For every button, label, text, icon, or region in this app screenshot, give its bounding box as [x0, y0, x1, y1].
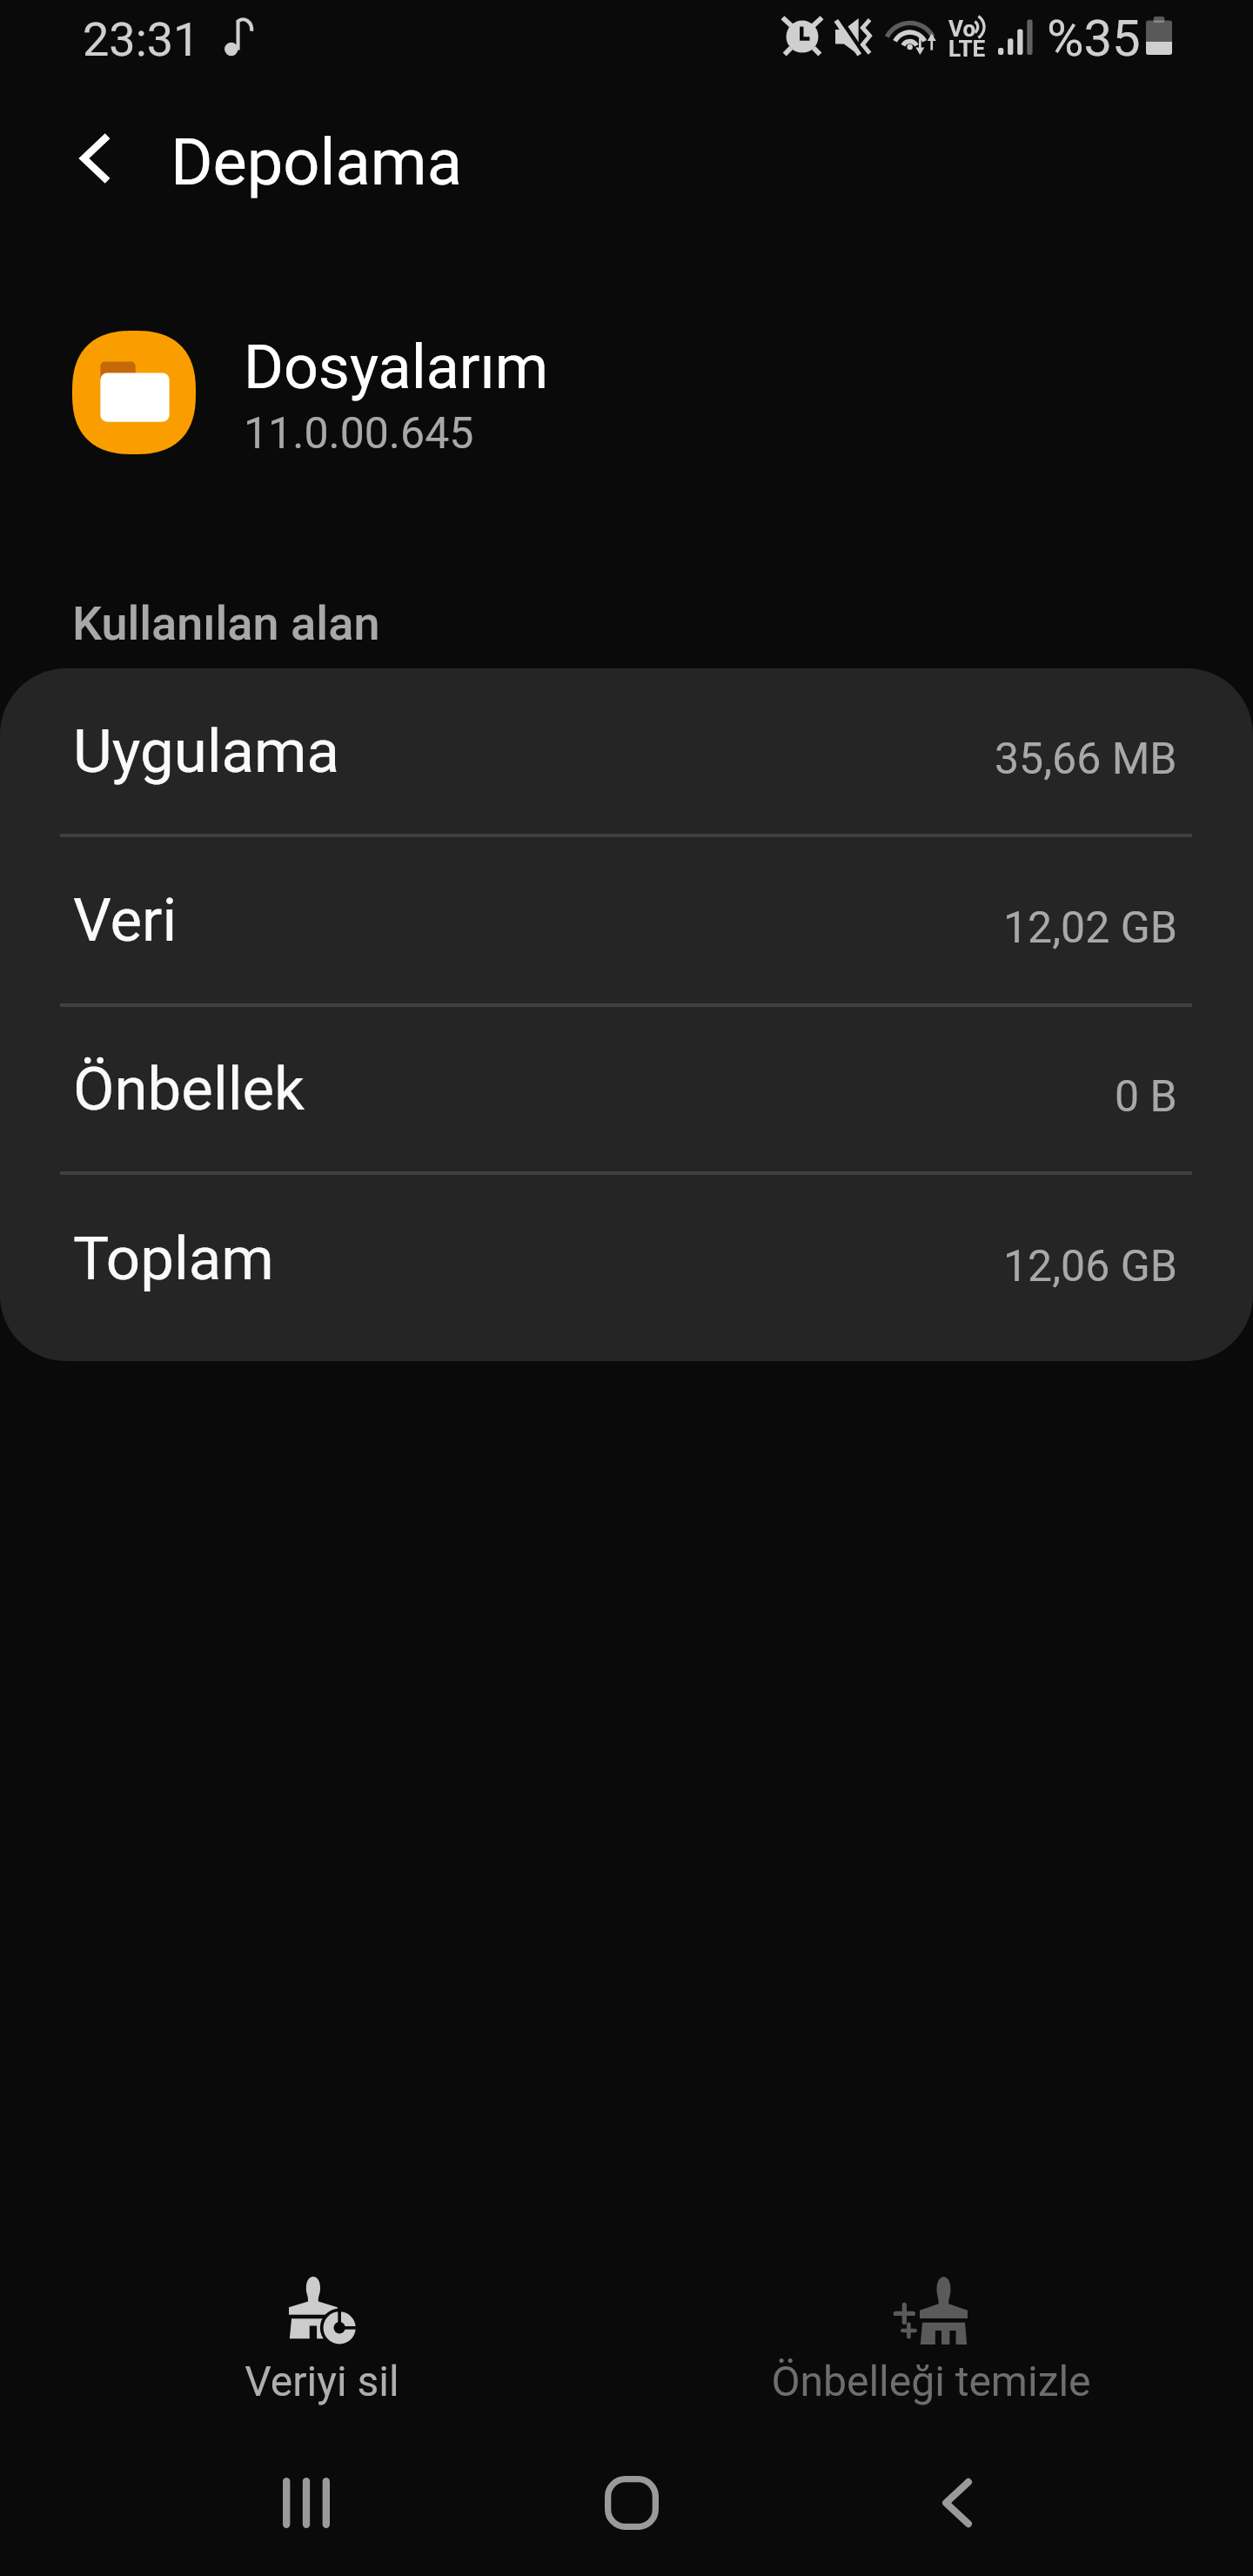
staticText: Toplam: [73, 1224, 1003, 1294]
staticText: Dosyalarım: [244, 332, 549, 403]
staticText: Veri: [73, 885, 1003, 956]
button[interactable]: Toplam: [0, 1175, 1253, 1342]
button[interactable]: Önbelleği temizle: [653, 2275, 1209, 2405]
button[interactable]: Uygulama: [0, 668, 1253, 834]
button[interactable]: Home: [553, 2451, 710, 2555]
staticText: 0 B: [1115, 1071, 1177, 1123]
staticText: Önbelleği temizle: [771, 2357, 1091, 2405]
button[interactable]: Back: [879, 2451, 1035, 2555]
button[interactable]: Veri: [0, 837, 1253, 1003]
staticText: Vo: [948, 16, 976, 42]
button[interactable]: Önbellek: [0, 1007, 1253, 1171]
button[interactable]: Veriyi sil: [44, 2275, 600, 2405]
button[interactable]: Back: [35, 97, 157, 219]
staticText: Veriyi sil: [245, 2357, 399, 2405]
staticText: %35: [1047, 9, 1141, 68]
button[interactable]: Recent apps: [228, 2451, 385, 2555]
staticText: Uygulama: [73, 716, 995, 787]
staticText: Önbellek: [73, 1054, 1115, 1124]
staticText: Depolama: [171, 124, 462, 200]
staticText: 35,66 MB: [995, 734, 1177, 785]
staticText: 11.0.00.645: [244, 408, 474, 460]
staticText: 12,02 GB: [1003, 902, 1177, 954]
staticText: 23:31: [83, 12, 200, 67]
staticText: LTE: [948, 36, 986, 62]
staticText: Kullanılan alan: [72, 596, 380, 651]
staticText: 12,06 GB: [1003, 1241, 1177, 1292]
